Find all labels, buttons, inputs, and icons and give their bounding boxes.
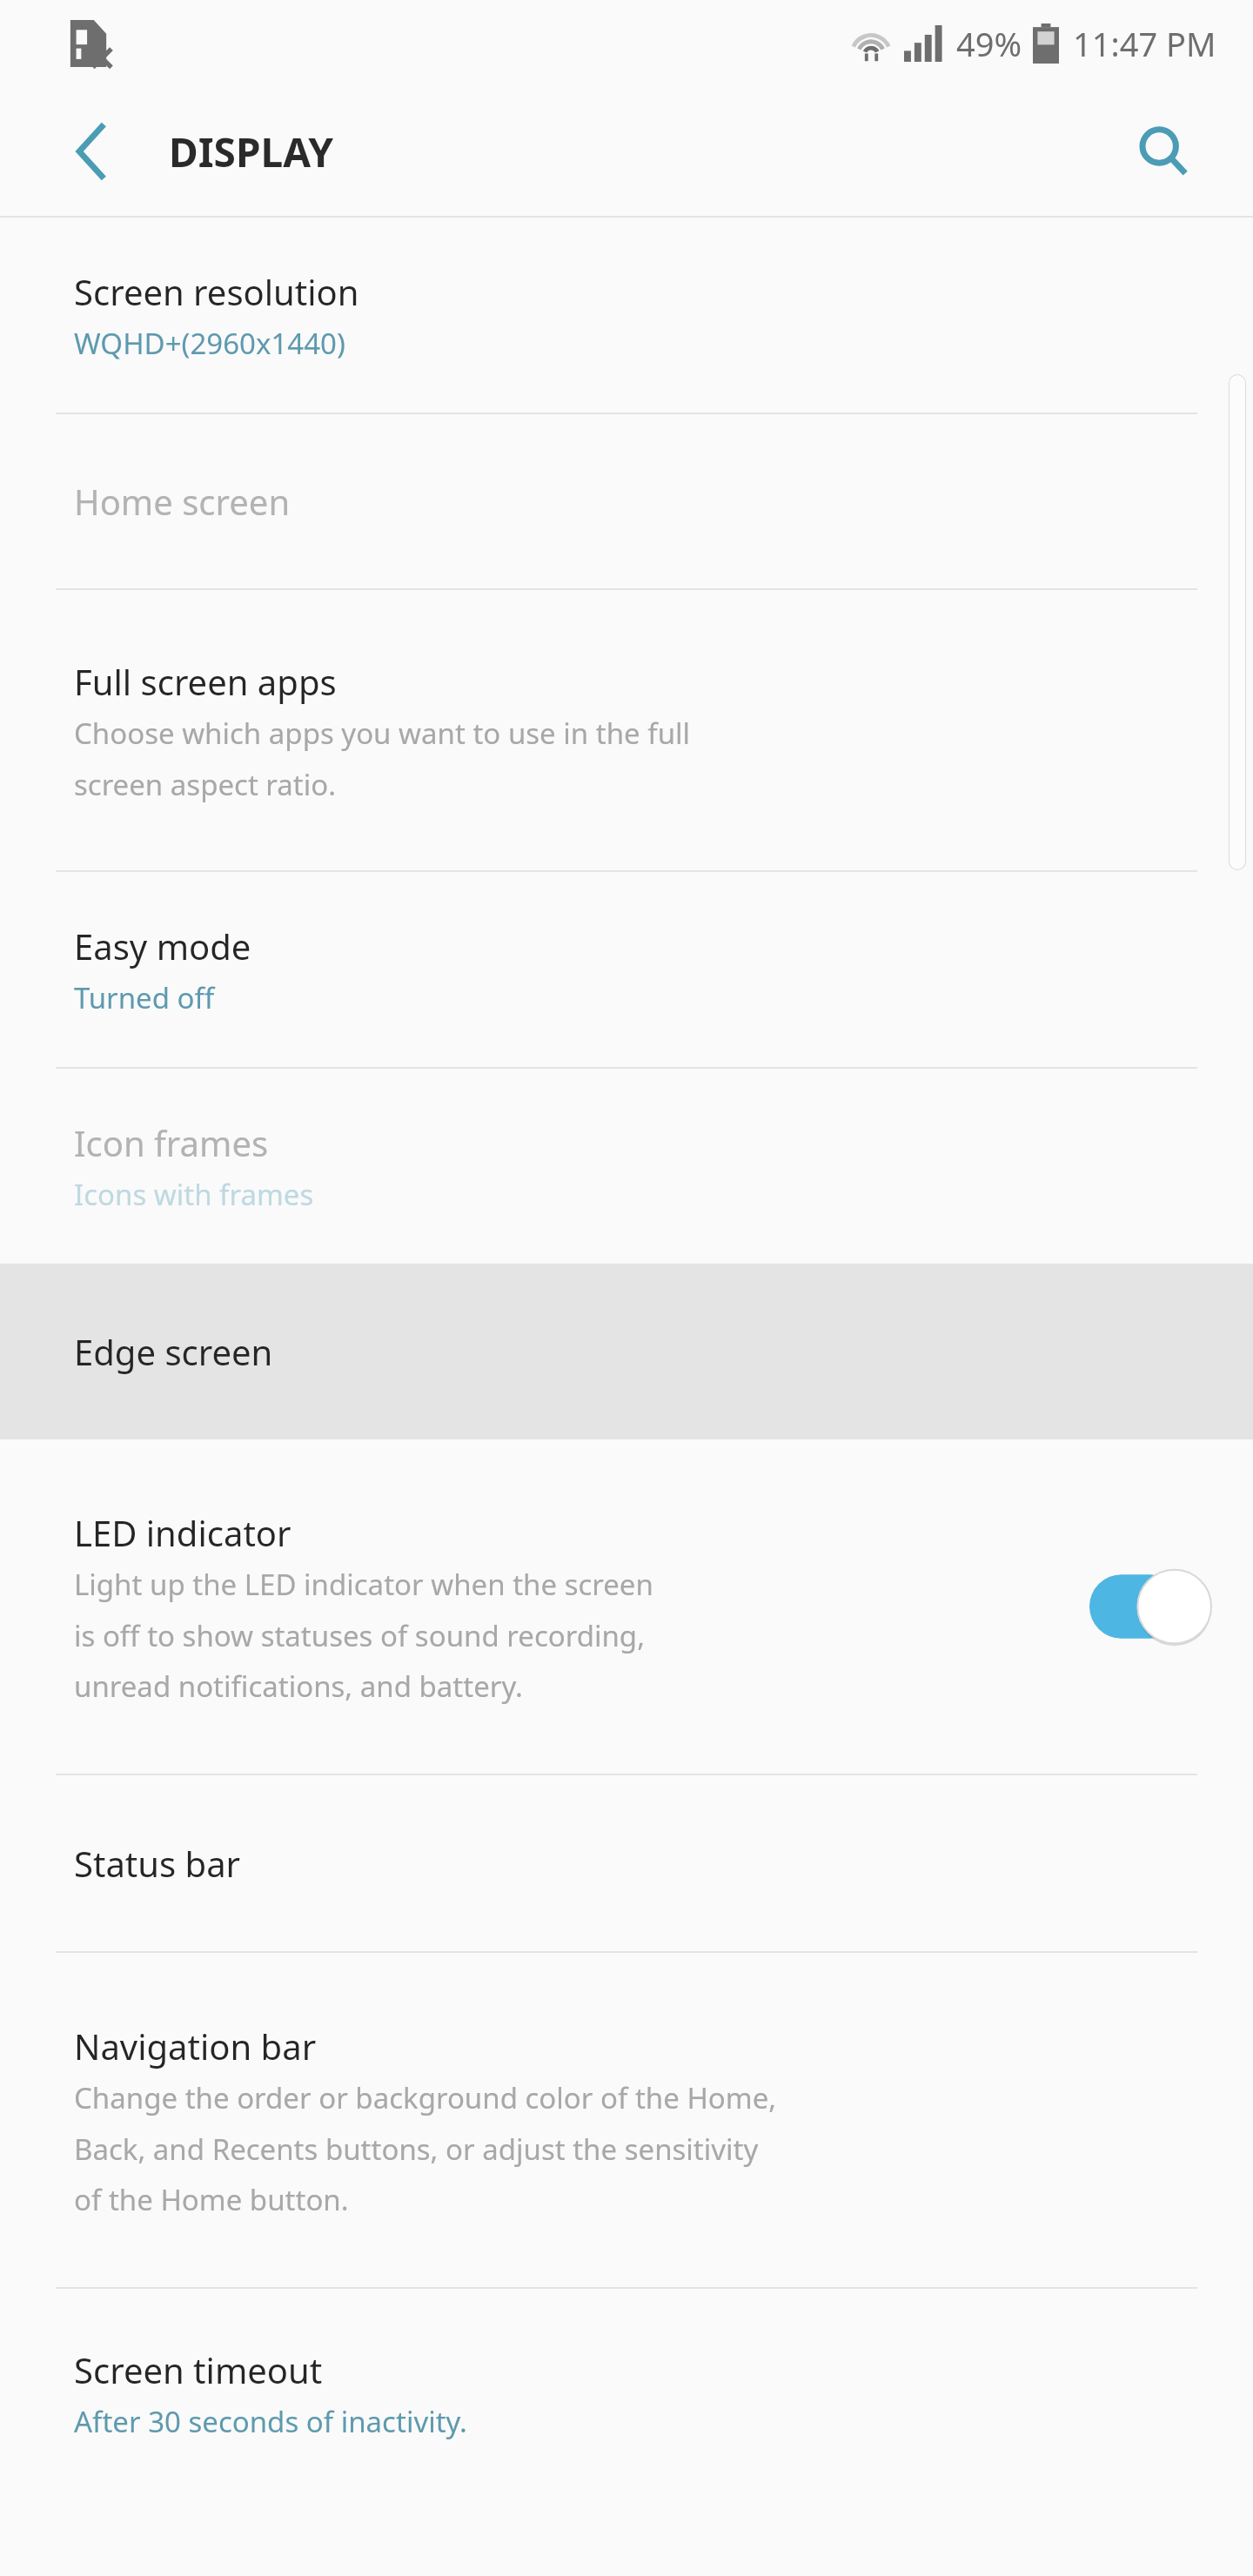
staticText: Status bar [74, 1840, 241, 1887]
staticText: Icons with frames [74, 1175, 314, 1214]
staticText: 49% [956, 21, 1022, 66]
button[interactable]: Icon frames [0, 1069, 1253, 1264]
staticText: Change the order or background color of … [74, 2078, 777, 2218]
staticText: Full screen apps [74, 658, 337, 705]
button[interactable]: Navigation bar [0, 1953, 1253, 2287]
button[interactable]: Status bar [0, 1775, 1253, 1951]
staticText: Icon frames [74, 1119, 269, 1166]
button[interactable]: Back [45, 104, 141, 199]
button[interactable]: Full screen apps [0, 590, 1253, 870]
button[interactable]: LED indicator [0, 1439, 1253, 1774]
staticText: Easy mode [74, 922, 251, 969]
staticText: Screen resolution [74, 268, 359, 315]
staticText: Light up the LED indicator when the scre… [74, 1565, 653, 1705]
button[interactable]: Screen timeout [0, 2289, 1253, 2498]
staticText: LED indicator [74, 1509, 291, 1556]
button[interactable]: LED indicator toggle [1089, 1566, 1211, 1647]
button[interactable]: Search [1116, 104, 1211, 199]
button[interactable]: Edge screen [0, 1264, 1253, 1439]
staticText: WQHD+(2960x1440) [74, 324, 345, 363]
staticText: Turned off [74, 978, 215, 1017]
button[interactable]: Home screen [0, 414, 1253, 588]
staticText: Navigation bar [74, 2023, 317, 2070]
button[interactable]: Screen resolution [0, 218, 1253, 413]
staticText: Edge screen [74, 1328, 273, 1375]
staticText: Choose which apps you want to use in the… [74, 714, 691, 803]
button[interactable]: Easy mode [0, 872, 1253, 1067]
staticText: Home screen [74, 478, 291, 525]
staticText: Screen timeout [74, 2346, 323, 2393]
staticText: After 30 seconds of inactivity. [74, 2402, 467, 2441]
staticText: 11:47 PM [1073, 21, 1216, 66]
staticText: DISPLAY [169, 124, 334, 179]
